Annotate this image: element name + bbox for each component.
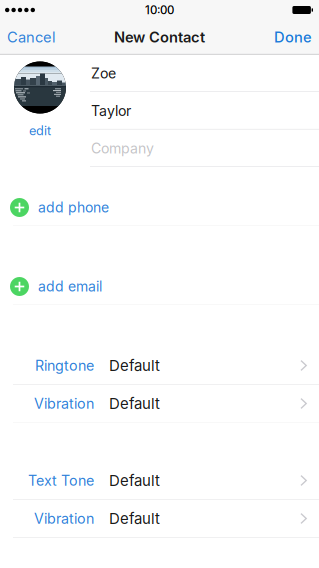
button[interactable]: Done	[264, 22, 319, 53]
button[interactable]: edit	[23, 113, 57, 138]
button[interactable]: Zoe	[80, 54, 319, 92]
button[interactable]: add phone	[0, 189, 319, 225]
button[interactable]: Ringtone	[0, 346, 319, 384]
staticText: Vibration	[34, 395, 94, 412]
staticText: Default	[109, 356, 160, 375]
staticText: Vibration	[34, 510, 94, 527]
staticText: 10:00	[145, 3, 174, 17]
staticText: Taylor	[91, 102, 131, 119]
staticText: Default	[109, 471, 160, 490]
button[interactable]: add email	[0, 268, 319, 304]
staticText: Ringtone	[35, 357, 94, 374]
staticText: add phone	[38, 199, 109, 216]
staticText: Default	[109, 394, 160, 413]
staticText: add email	[38, 278, 102, 295]
staticText: New Contact	[114, 28, 205, 46]
button[interactable]: Company	[80, 129, 319, 167]
button[interactable]: Text Tone	[0, 461, 319, 499]
button[interactable]: Cancel	[0, 22, 66, 53]
staticText: edit	[29, 123, 51, 138]
staticText: Done	[274, 28, 312, 46]
button[interactable]: Vibration	[0, 499, 319, 537]
staticText: Default	[109, 509, 160, 528]
button[interactable]: Taylor	[80, 92, 319, 129]
staticText: Text Tone	[28, 472, 94, 489]
staticText: Zoe	[91, 65, 116, 82]
staticText: Company	[91, 140, 154, 157]
button[interactable]: Vibration	[0, 384, 319, 422]
staticText: Cancel	[7, 28, 56, 46]
